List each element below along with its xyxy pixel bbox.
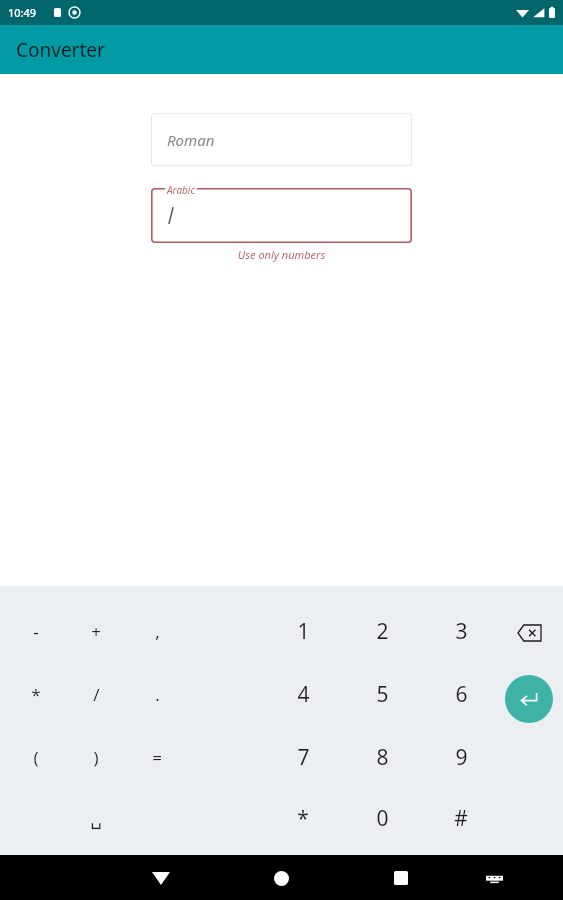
button[interactable]: Keyboard xyxy=(472,856,516,900)
staticText: Use only numbers xyxy=(151,247,412,262)
button[interactable]: Arabic xyxy=(151,188,412,243)
staticText: * xyxy=(297,804,309,833)
staticText: 2 xyxy=(376,617,389,646)
button[interactable]: Roman xyxy=(151,113,412,166)
staticText: 9 xyxy=(455,743,468,772)
button[interactable]: 4 xyxy=(273,664,333,724)
button[interactable]: ␣ xyxy=(66,788,126,848)
staticText: / xyxy=(93,683,100,706)
button[interactable]: 8 xyxy=(352,727,412,787)
staticText: , xyxy=(155,620,160,643)
staticText: 0 xyxy=(376,804,389,833)
button[interactable]: , xyxy=(127,601,187,661)
staticText: 1 xyxy=(297,617,310,646)
button[interactable]: = xyxy=(127,727,187,787)
button[interactable]: # xyxy=(431,788,491,848)
staticText: # xyxy=(454,804,468,833)
button[interactable]: 3 xyxy=(431,601,491,661)
staticText: . xyxy=(155,683,160,706)
button[interactable]: Recents xyxy=(379,856,423,900)
staticText: Converter xyxy=(16,37,105,63)
button[interactable]: ) xyxy=(66,727,126,787)
button[interactable]: * xyxy=(6,664,66,724)
staticText: 5 xyxy=(376,680,389,709)
button[interactable]: Backspace xyxy=(505,609,553,657)
button[interactable]: * xyxy=(273,788,333,848)
button[interactable]: . xyxy=(127,664,187,724)
button[interactable]: 7 xyxy=(273,727,333,787)
staticText: Arabic xyxy=(167,183,195,197)
button[interactable]: Enter xyxy=(505,675,553,723)
button[interactable]: 6 xyxy=(431,664,491,724)
staticText: Roman xyxy=(167,130,215,150)
staticText: 3 xyxy=(455,617,468,646)
button[interactable]: Back xyxy=(139,856,183,900)
staticText: ( xyxy=(33,746,39,769)
button[interactable]: / xyxy=(66,664,126,724)
staticText: * xyxy=(31,683,41,706)
button[interactable]: 2 xyxy=(352,601,412,661)
staticText: - xyxy=(33,620,39,643)
staticText: 4 xyxy=(297,680,310,709)
button[interactable]: 1 xyxy=(273,601,333,661)
staticText: 6 xyxy=(455,680,468,709)
button[interactable]: ( xyxy=(6,727,66,787)
button[interactable]: 5 xyxy=(352,664,412,724)
staticText: = xyxy=(152,746,162,769)
staticText: ␣ xyxy=(90,808,102,829)
button[interactable]: 9 xyxy=(431,727,491,787)
staticText: 8 xyxy=(376,743,389,772)
button[interactable]: 0 xyxy=(352,788,412,848)
button[interactable]: - xyxy=(6,601,66,661)
button[interactable]: + xyxy=(66,601,126,661)
staticText: ) xyxy=(93,746,99,769)
staticText: 10:49 xyxy=(8,5,37,20)
staticText: + xyxy=(91,620,101,643)
button[interactable]: Home xyxy=(259,856,303,900)
staticText: 7 xyxy=(297,743,310,772)
